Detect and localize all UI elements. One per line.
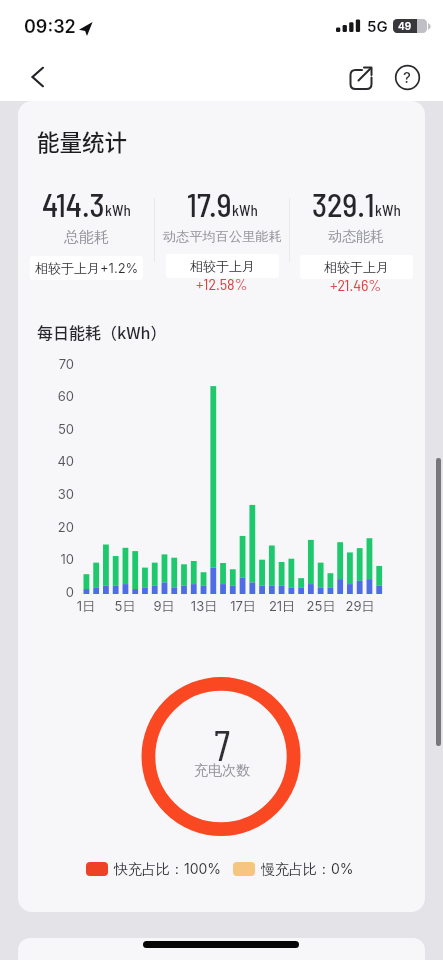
staticText: 17.9 [187,185,232,223]
staticText: 总能耗 [64,228,109,247]
staticText: 动态平均百公里能耗 [163,228,282,245]
button[interactable] [18,58,58,96]
staticText: 0 [44,584,74,600]
staticText: 70 [44,356,74,372]
button[interactable]: ? [389,58,425,96]
staticText: +21.46% [330,275,382,294]
staticText: 29日 [340,598,380,614]
staticText: 40 [44,453,74,469]
staticText: kWh [375,201,401,219]
staticText: +12.58% [196,274,248,293]
button[interactable]: 慢充占比：0% [233,860,354,878]
staticText: 21日 [262,598,302,614]
staticText: 相较于上月 [324,259,389,275]
button[interactable]: 414.3 [11,185,161,280]
staticText: 相较于上月 [190,258,255,274]
button[interactable]: 17.9 [147,185,297,297]
staticText: ? [403,68,411,86]
staticText: 1日 [66,598,106,614]
staticText: 7 [172,718,272,770]
staticText: 9日 [144,598,184,614]
staticText: 快充占比：100% [114,860,222,878]
button[interactable]: 快充占比：100% [86,860,222,878]
staticText: 09:32 [24,16,76,38]
button[interactable] [343,58,381,96]
staticText: 能量统计 [37,125,128,158]
staticText: 25日 [301,598,341,614]
staticText: 13日 [184,598,224,614]
staticText: 20 [44,519,74,535]
staticText: kWh [232,201,258,219]
staticText: 10 [44,551,74,567]
staticText: 329.1 [312,185,375,223]
staticText: 动态能耗 [328,228,384,246]
staticText: 17日 [223,598,263,614]
staticText: 充电次数 [172,762,272,780]
staticText: 414.3 [42,185,105,223]
staticText: 慢充占比：0% [261,860,354,878]
staticText: 5日 [105,598,145,614]
staticText: 5G [367,17,388,35]
staticText: 49 [398,20,412,32]
staticText: 30 [44,486,74,502]
staticText: kWh [105,201,131,219]
button[interactable]: 329.1 [281,185,431,298]
staticText: 60 [44,388,74,404]
staticText: 50 [44,421,74,437]
staticText: 每日能耗（kWh） [37,320,167,343]
staticText: 相较于上月+1.2% [35,260,139,276]
